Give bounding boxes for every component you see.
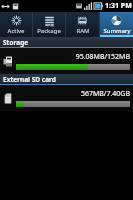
staticText: Package: [37, 27, 61, 35]
button[interactable]: Active applic.: [0, 12, 32, 37]
button[interactable]: External SD card: [0, 85, 133, 111]
staticText: 1:31 PM: [105, 1, 132, 11]
button[interactable]: Internal storage: [0, 48, 133, 74]
button[interactable]: RAM: [66, 12, 99, 37]
staticText: Active applic.: [0, 27, 32, 35]
staticText: Summary: [103, 27, 131, 35]
staticText: RAM: [76, 27, 90, 35]
button[interactable]: Package: [33, 12, 65, 37]
staticText: 567MB/7.40GB: [16, 89, 130, 99]
staticText: Storage: [3, 38, 29, 47]
staticText: 95.08MB/152MB: [16, 52, 130, 62]
staticText: External SD card: [3, 75, 56, 84]
button[interactable]: Summary: [100, 12, 133, 37]
